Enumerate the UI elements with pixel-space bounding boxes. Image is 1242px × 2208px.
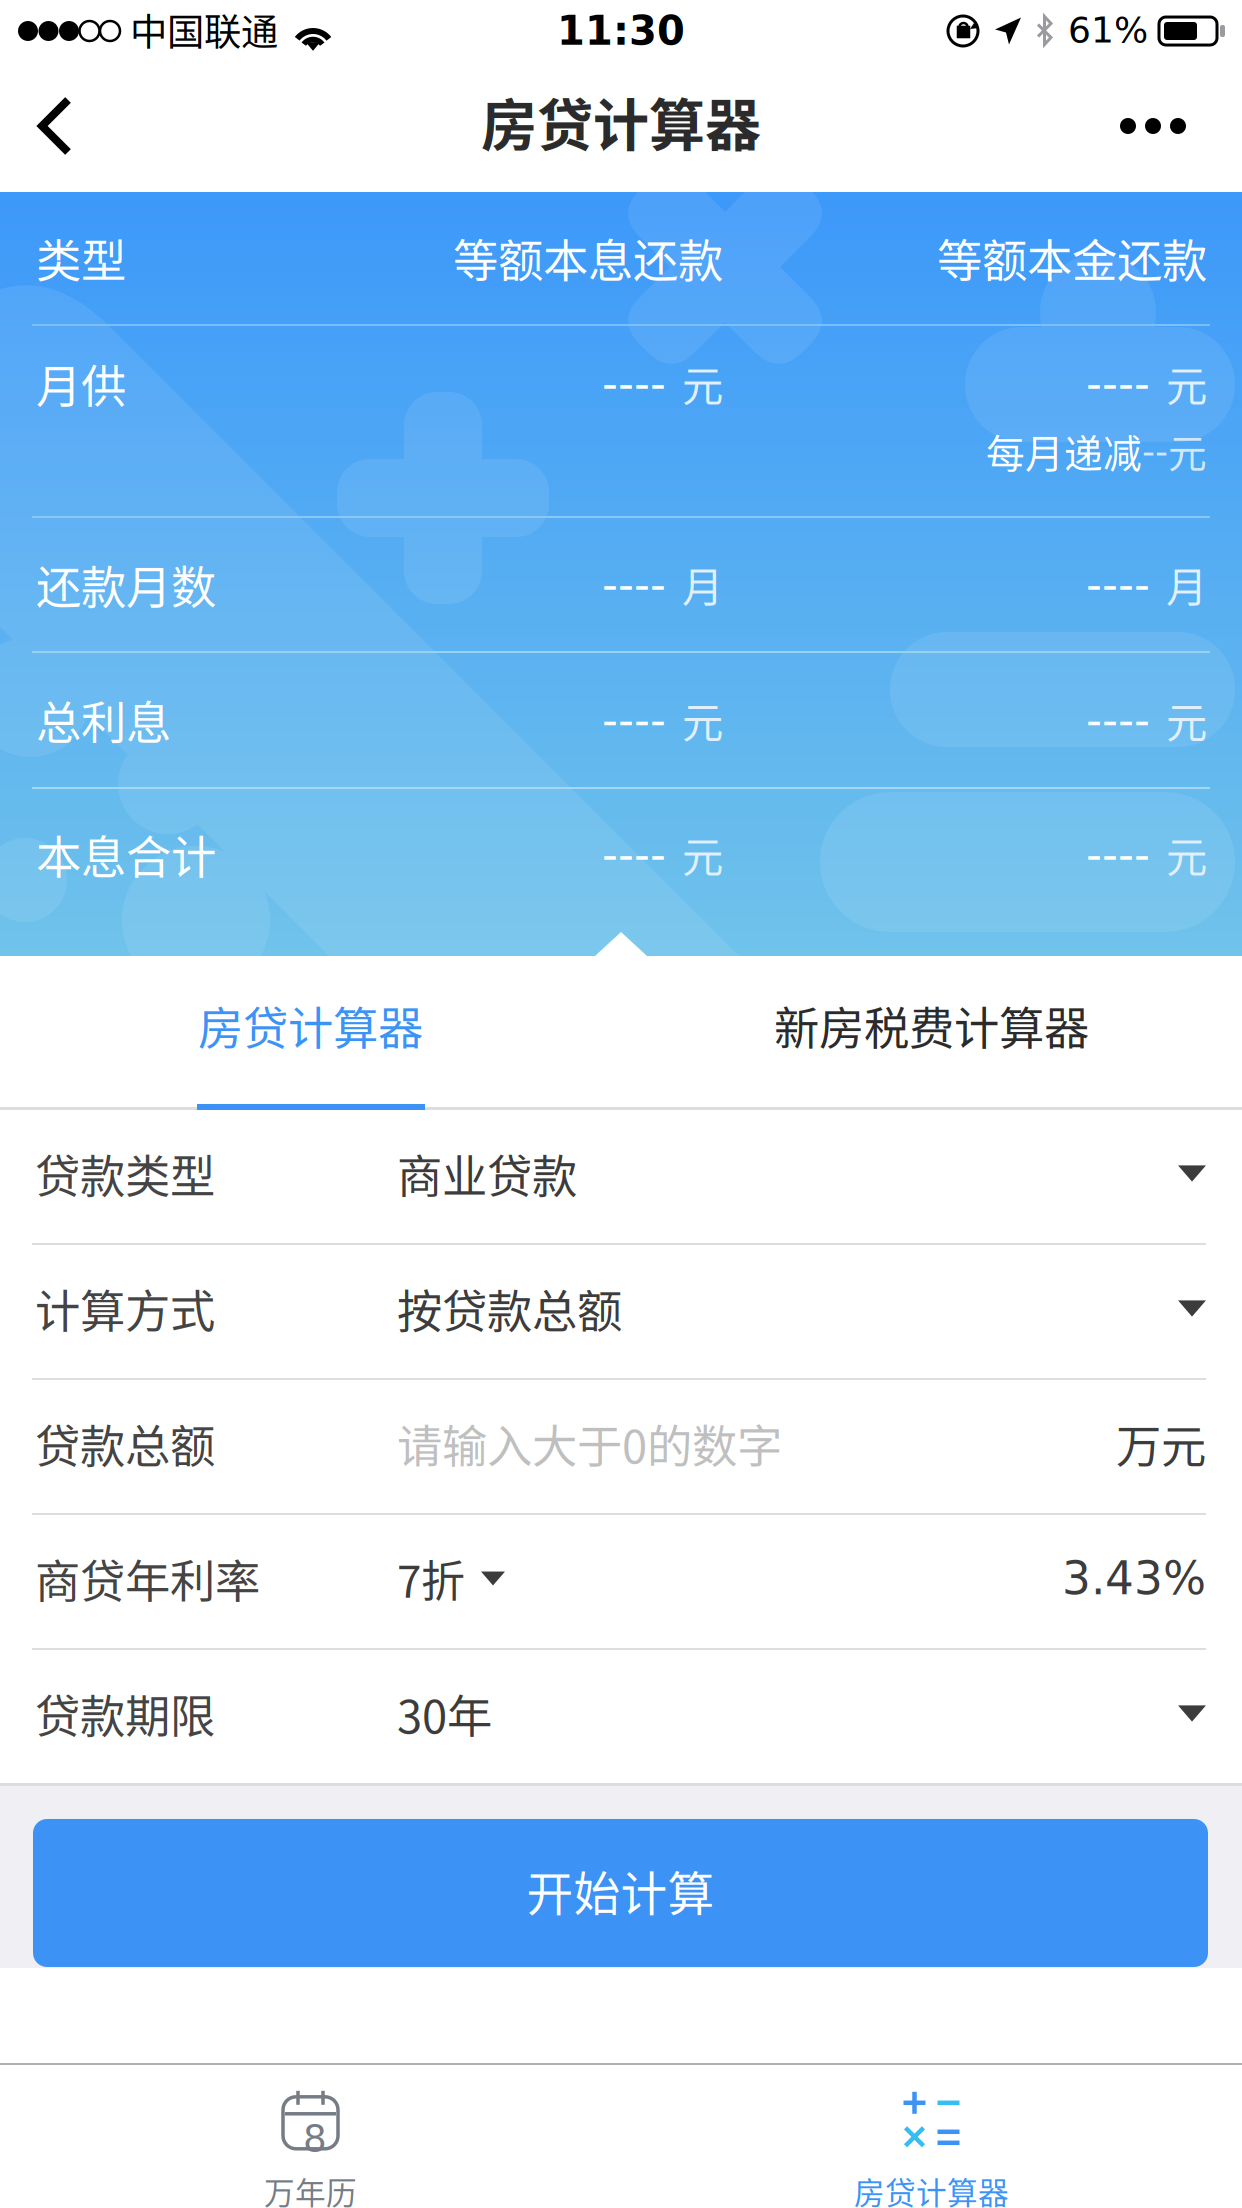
staticText: 房贷计算器 [481,80,761,162]
staticText: ---- [1086,694,1150,746]
staticText: ---- [1086,829,1150,880]
button[interactable]: 贷款期限 [0,1650,1242,1783]
staticText: ---- [602,559,666,610]
button[interactable]: 贷款类型 [0,1110,1242,1243]
button[interactable]: 新房税费计算器 [621,956,1242,1107]
button[interactable]: 贷款总额 [0,1380,1242,1513]
staticText: 元 [1166,354,1207,413]
staticText: 按贷款总额 [397,1276,622,1341]
staticText: 元 [1166,825,1207,884]
staticText: 月 [1166,555,1207,614]
staticText: 开始计算 [526,1857,714,1924]
staticText: 月 [682,555,723,614]
button[interactable]: Back [0,62,116,192]
staticText: 7折 [397,1547,465,1610]
staticText: 等额本金还款 [937,225,1207,291]
staticText: 总利息 [36,687,171,753]
staticText: 商业贷款 [397,1141,577,1206]
button[interactable]: 商贷年利率 [0,1515,1242,1648]
staticText: -- [1142,430,1168,472]
staticText: 每月递减 [986,423,1142,479]
button[interactable]: 计算方式 [0,1245,1242,1378]
staticText: 元 [682,354,723,413]
staticText: 元 [682,825,723,884]
staticText: 中国联通 [130,2,278,57]
staticText: 还款月数 [36,552,216,617]
staticText: 商贷年利率 [35,1546,260,1611]
staticText: 计算方式 [35,1276,215,1341]
staticText: 万年历 [264,2169,357,2208]
staticText: 本息合计 [36,822,216,887]
staticText: 月供 [36,351,126,416]
staticText: ---- [1086,559,1150,610]
staticText: ---- [602,358,666,409]
staticText: 请输入大于0的数字 [397,1411,782,1476]
staticText: 万元 [1116,1411,1206,1476]
staticText: 房贷计算器 [854,2169,1009,2208]
staticText: 贷款期限 [35,1681,215,1746]
staticText: 等额本息还款 [453,225,723,291]
staticText: 61% [1068,9,1148,51]
button[interactable]: 8 [0,2065,621,2208]
staticText: 8 [303,2117,327,2160]
staticText: ---- [1086,358,1150,409]
staticText: 贷款类型 [35,1141,215,1206]
button[interactable]: 房贷计算器 [0,956,621,1107]
staticText: 贷款总额 [35,1411,215,1476]
staticText: 新房税费计算器 [774,993,1089,1058]
staticText: 30年 [397,1681,492,1746]
staticText: 房贷计算器 [198,993,423,1058]
staticText: 元 [1168,423,1207,479]
button[interactable]: 开始计算 [0,1786,1242,1967]
button[interactable]: 房贷计算器 [621,2065,1242,2208]
staticText: 3.43% [1062,1552,1206,1605]
staticText: 11:30 [557,8,685,54]
staticText: ---- [602,829,666,880]
button[interactable]: More [1060,62,1242,192]
staticText: 元 [682,690,723,750]
staticText: 类型 [36,225,126,291]
staticText: 元 [1166,690,1207,750]
staticText: ---- [602,694,666,746]
